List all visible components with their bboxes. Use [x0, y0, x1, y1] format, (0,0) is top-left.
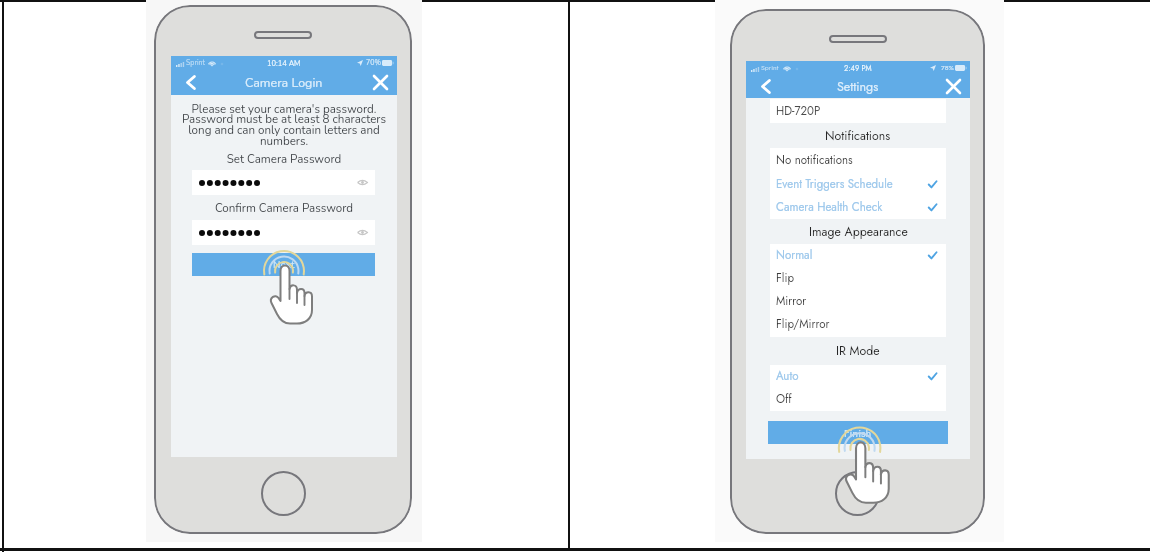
button[interactable]: Normal: [770, 244, 946, 267]
staticText: Set Camera Password: [171, 151, 397, 167]
button[interactable]: No notifications: [770, 148, 946, 172]
staticText: Sprint: [186, 58, 205, 68]
staticText: No notifications: [776, 152, 853, 169]
staticText: Event Triggers Schedule: [776, 176, 893, 193]
button[interactable]: Event Triggers Schedule: [770, 172, 946, 196]
button[interactable]: HD-720P: [770, 99, 946, 123]
staticText: IR Mode: [836, 342, 880, 360]
staticText: 70%: [366, 58, 381, 68]
staticText: 2:49 PM: [844, 63, 872, 74]
button[interactable]: Camera Health Check: [770, 196, 946, 219]
staticText: Off: [776, 391, 792, 408]
staticText: Camera Health Check: [776, 199, 883, 216]
staticText: Next: [273, 258, 295, 272]
staticText: Finish: [844, 425, 872, 441]
staticText: Settings: [837, 78, 879, 96]
staticText: 10:14 AM: [267, 58, 301, 68]
staticText: Flip: [776, 270, 794, 287]
staticText: Confirm Camera Password: [171, 200, 397, 216]
staticText: Sprint: [761, 63, 779, 73]
staticText: HD-720P: [776, 103, 821, 120]
button[interactable]: Back: [183, 75, 198, 90]
staticText: Mirror: [776, 293, 807, 310]
button[interactable]: Finish: [768, 421, 948, 444]
staticText: Auto: [776, 368, 799, 385]
button[interactable]: Next: [192, 253, 375, 276]
staticText: Please set your camera's password. Passw…: [172, 101, 396, 149]
staticText: Image Appearance: [809, 223, 908, 241]
button[interactable]: Auto: [770, 365, 946, 388]
button[interactable]: Back: [758, 79, 773, 94]
staticText: 78%: [941, 63, 954, 73]
button[interactable]: Close: [374, 76, 387, 89]
button[interactable]: Close: [947, 80, 960, 93]
button[interactable]: Flip: [770, 267, 946, 290]
button[interactable]: Mirror: [770, 290, 946, 313]
staticText: Normal: [776, 247, 813, 264]
staticText: Camera Login: [245, 74, 323, 91]
staticText: Notifications: [825, 127, 891, 145]
button[interactable]: Flip/Mirror: [770, 313, 946, 336]
staticText: Flip/Mirror: [776, 316, 830, 333]
button[interactable]: Off: [770, 388, 946, 411]
